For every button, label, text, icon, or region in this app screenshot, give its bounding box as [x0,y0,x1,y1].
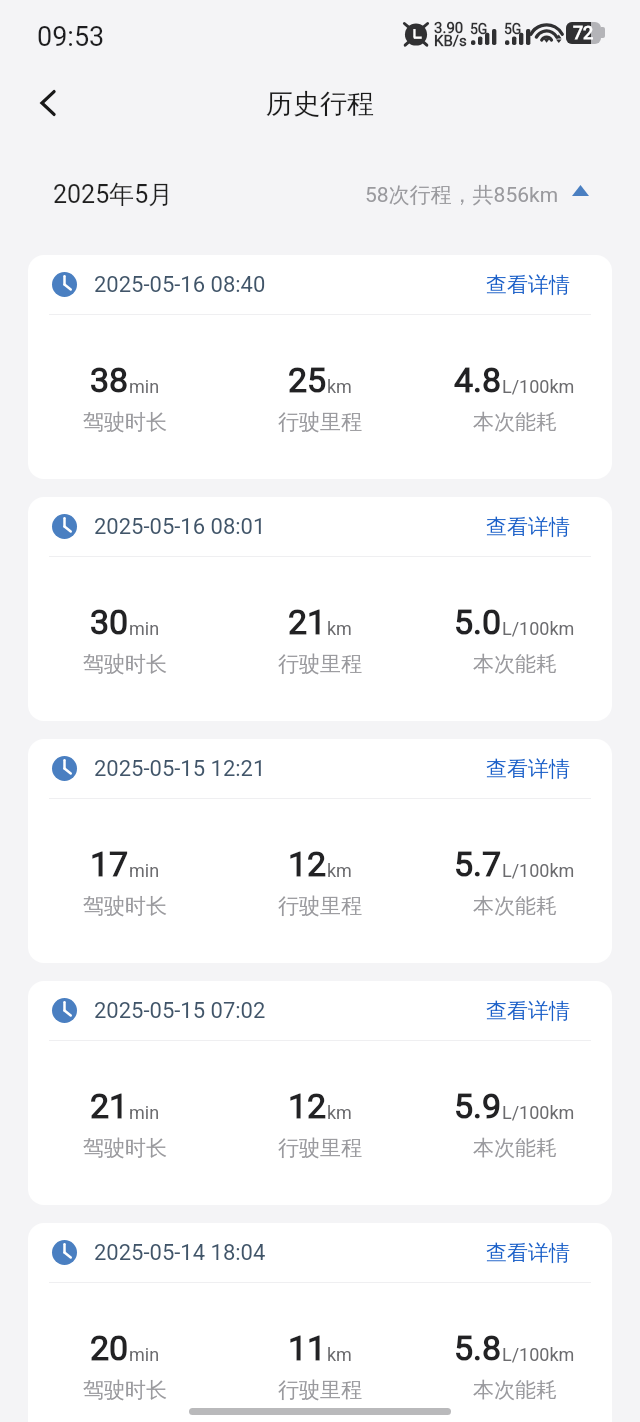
staticText: 驾驶时长 [83,1135,167,1161]
staticText: 行驶里程 [278,651,362,677]
button[interactable]: 查看详情 [486,756,570,782]
staticText: min [129,376,160,397]
staticText: min [129,1102,160,1123]
staticText: 2025-05-15 07:02 [94,998,266,1024]
button[interactable]: 2025-05-15 07:02 [28,981,612,1205]
staticText: 5.8 [454,1328,502,1368]
staticText: 38 [90,360,129,400]
staticText: KB/s [434,32,467,50]
button[interactable]: 2025-05-16 08:01 [28,497,612,721]
button[interactable]: 查看详情 [486,272,570,298]
staticText: 5G [504,21,522,37]
staticText: km [327,1102,352,1123]
staticText: 30 [90,602,129,642]
staticText: 本次能耗 [473,651,557,677]
staticText: L/100km [502,376,575,397]
staticText: 25 [288,360,327,400]
staticText: km [327,618,352,639]
staticText: 本次能耗 [473,1135,557,1161]
staticText: 本次能耗 [473,409,557,435]
staticText: km [327,1344,352,1365]
staticText: 11 [288,1328,327,1368]
staticText: L/100km [502,1344,575,1365]
staticText: min [129,860,160,881]
staticText: 本次能耗 [473,1377,557,1403]
staticText: 2025-05-14 18:04 [94,1240,266,1266]
staticText: 5G [470,21,488,37]
button[interactable]: 2025-05-15 12:21 [28,739,612,963]
staticText: 21 [90,1086,129,1126]
button[interactable]: 查看详情 [486,998,570,1024]
staticText: 12 [288,844,327,884]
staticText: 5.0 [454,602,502,642]
staticText: L/100km [502,618,575,639]
staticText: 09:53 [37,21,105,53]
staticText: 驾驶时长 [83,1377,167,1403]
staticText: 5.7 [454,844,502,884]
button[interactable]: 查看详情 [486,514,570,540]
staticText: 72 [573,22,594,43]
staticText: 行驶里程 [278,1377,362,1403]
button[interactable]: Back [24,79,72,127]
staticText: 2025-05-16 08:40 [94,272,266,298]
staticText: L/100km [502,1102,575,1123]
staticText: L/100km [502,860,575,881]
staticText: 5.9 [454,1086,502,1126]
staticText: 4.8 [454,360,502,400]
staticText: 21 [288,602,327,642]
staticText: 2025-05-15 12:21 [94,756,266,782]
staticText: 行驶里程 [278,893,362,919]
staticText: km [327,860,352,881]
staticText: 58次行程，共856km [365,182,559,208]
staticText: 驾驶时长 [83,409,167,435]
staticText: 行驶里程 [278,409,362,435]
staticText: 12 [288,1086,327,1126]
staticText: 行驶里程 [278,1135,362,1161]
staticText: 驾驶时长 [83,893,167,919]
staticText: km [327,376,352,397]
button[interactable]: 2025-05-16 08:40 [28,255,612,479]
staticText: 3.90 [434,19,464,37]
staticText: min [129,618,160,639]
staticText: 历史行程 [266,87,374,121]
staticText: 2025-05-16 08:01 [94,514,266,540]
button[interactable]: 58次行程，共856km [365,182,589,208]
button[interactable]: 2025-05-14 18:04 [28,1223,612,1422]
staticText: 驾驶时长 [83,651,167,677]
staticText: min [129,1344,160,1365]
staticText: 2025年5月 [53,179,174,210]
staticText: 20 [90,1328,129,1368]
staticText: 本次能耗 [473,893,557,919]
staticText: 17 [90,844,129,884]
button[interactable]: 查看详情 [486,1240,570,1266]
